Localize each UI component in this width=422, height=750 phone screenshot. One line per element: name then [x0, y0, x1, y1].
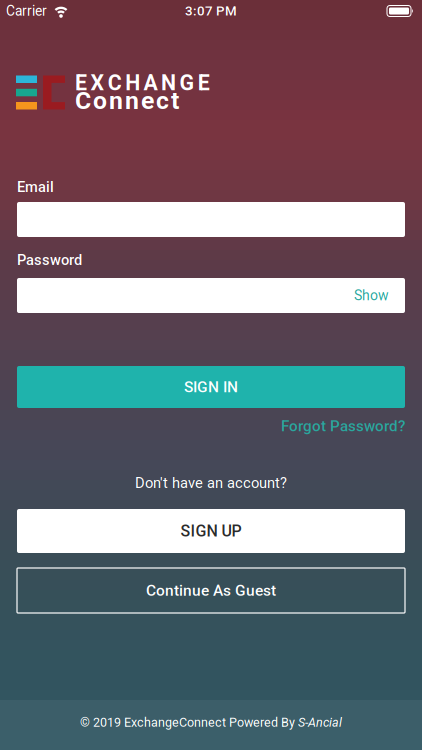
staticText: n — [109, 86, 123, 115]
staticText: Don't have an account? — [135, 474, 287, 492]
staticText: X — [90, 70, 104, 95]
staticText: N — [161, 70, 176, 95]
staticText: C — [108, 70, 122, 95]
staticText: c — [156, 86, 169, 115]
staticText: H — [125, 70, 140, 95]
staticText: t — [171, 86, 179, 115]
button[interactable]: Password — [17, 278, 405, 313]
staticText: n — [125, 86, 139, 115]
button[interactable]: SIGN UP — [17, 509, 405, 553]
staticText: A — [144, 70, 158, 95]
staticText: E — [75, 70, 87, 95]
staticText: Carrier — [6, 3, 47, 19]
staticText: e — [141, 86, 154, 115]
staticText: Email — [17, 178, 54, 196]
button[interactable]: Continue As Guest — [17, 568, 405, 613]
button[interactable]: Show — [354, 287, 389, 304]
staticText: E — [198, 70, 210, 95]
staticText: 3:07 PM — [185, 3, 237, 19]
button[interactable]: Forgot Password? — [281, 417, 405, 435]
staticText: Forgot Password? — [281, 417, 405, 435]
staticText: Show — [354, 287, 389, 304]
staticText: © 2019 ExchangeConnect Powered By S-Anci… — [80, 715, 342, 730]
staticText: Continue As Guest — [146, 581, 276, 599]
staticText: Password — [17, 251, 82, 269]
staticText: G — [179, 70, 194, 95]
staticText: o — [93, 86, 107, 115]
button[interactable]: SIGN IN — [17, 366, 405, 408]
staticText: C — [75, 86, 91, 115]
staticText: SIGN UP — [180, 522, 241, 540]
staticText: SIGN IN — [184, 378, 238, 396]
